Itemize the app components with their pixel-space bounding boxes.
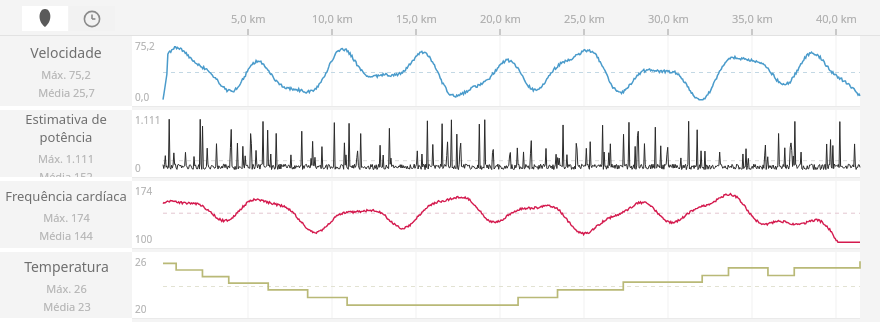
staticText: Máx. 1.111: [38, 151, 94, 166]
button[interactable]: Map: [22, 6, 68, 31]
staticText: 15,0 km: [396, 11, 437, 26]
staticText: Máx. 75,2: [41, 67, 91, 82]
staticText: 1.111: [135, 113, 161, 127]
staticText: Média 23: [43, 299, 91, 314]
button[interactable]: Temperatura: [0, 252, 132, 318]
staticText: 0,0: [135, 90, 150, 104]
button[interactable]: Time: [69, 6, 115, 31]
staticText: Velocidade: [30, 43, 102, 62]
staticText: 26: [135, 255, 147, 269]
staticText: 0: [135, 161, 141, 175]
staticText: Média 152: [39, 169, 93, 177]
staticText: Estimativa de potência: [0, 110, 132, 146]
staticText: Média 25,7: [38, 85, 95, 100]
staticText: Média 144: [39, 228, 93, 243]
button[interactable]: Frequência cardíaca: [0, 181, 132, 248]
staticText: 10,0 km: [312, 11, 353, 26]
staticText: 174: [135, 184, 153, 198]
button[interactable]: Estimativa de potência: [0, 110, 132, 177]
staticText: 20: [135, 302, 147, 316]
staticText: 20,0 km: [480, 11, 521, 26]
staticText: 100: [135, 232, 153, 246]
staticText: 35,0 km: [732, 11, 773, 26]
staticText: Frequência cardíaca: [5, 187, 127, 205]
staticText: Temperatura: [24, 257, 109, 276]
staticText: 40,0 km: [816, 11, 857, 26]
button[interactable]: Velocidade: [0, 36, 132, 106]
staticText: Máx. 174: [43, 210, 90, 225]
staticText: 5,0 km: [231, 11, 266, 26]
staticText: 25,0 km: [564, 11, 605, 26]
staticText: 75,2: [135, 39, 155, 53]
staticText: 30,0 km: [648, 11, 689, 26]
staticText: Máx. 26: [46, 281, 87, 296]
